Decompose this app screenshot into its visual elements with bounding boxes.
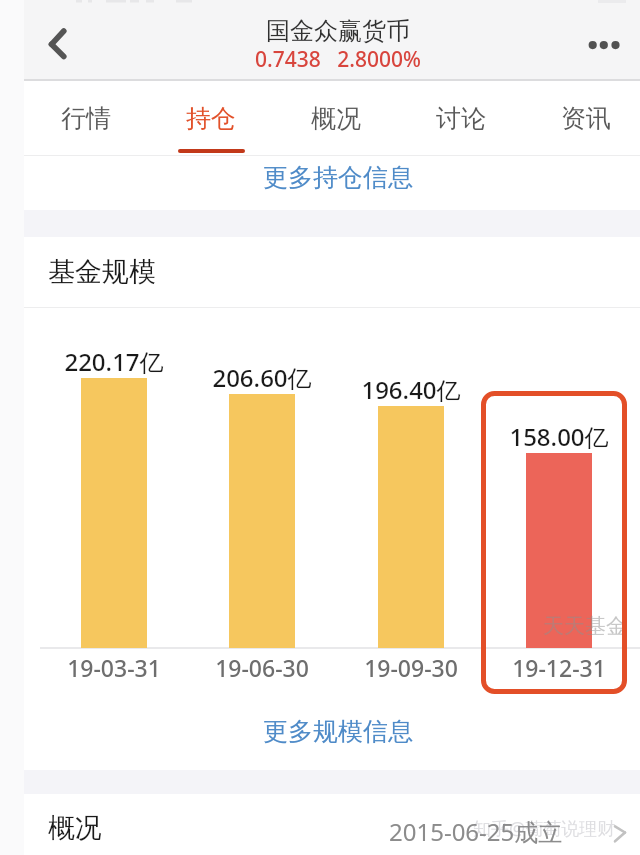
staticText: 天天基金 bbox=[543, 613, 627, 639]
button[interactable]: Back bbox=[30, 17, 82, 69]
staticText: 19-06-30 bbox=[215, 652, 309, 683]
staticText: 220.17亿 bbox=[64, 345, 164, 378]
button[interactable]: More options bbox=[578, 20, 628, 70]
button[interactable]: 更多规模信息 bbox=[0, 700, 640, 770]
staticText: 资讯 bbox=[561, 103, 611, 134]
staticText: 19-09-30 bbox=[364, 652, 458, 683]
button[interactable]: 概况 bbox=[274, 81, 398, 156]
staticText: 更多规模信息 bbox=[263, 716, 413, 747]
staticText: 基金规模 bbox=[48, 255, 156, 289]
staticText: 国金众赢货币 bbox=[266, 16, 410, 46]
button[interactable]: 持仓 bbox=[149, 81, 273, 156]
staticText: 概况 bbox=[48, 811, 102, 845]
staticText: 更多持仓信息 bbox=[263, 162, 413, 193]
staticText: 行情 bbox=[61, 103, 111, 134]
staticText: 讨论 bbox=[436, 103, 486, 134]
staticText: 知乎@葡萄说理财 bbox=[473, 816, 616, 841]
staticText: 196.40亿 bbox=[361, 373, 461, 406]
button[interactable]: 讨论 bbox=[399, 81, 523, 156]
button[interactable]: 行情 bbox=[24, 81, 148, 156]
staticText: 概况 bbox=[311, 103, 361, 134]
staticText: 19-03-31 bbox=[67, 652, 161, 683]
staticText: 持仓 bbox=[186, 103, 236, 134]
staticText: 2015-06-25成立 bbox=[389, 815, 563, 848]
button[interactable]: 更多持仓信息 bbox=[0, 156, 640, 210]
staticText: 19-12-31 bbox=[512, 652, 606, 683]
button[interactable]: 资讯 bbox=[524, 81, 640, 156]
staticText: 0.7438 2.8000% bbox=[255, 45, 421, 74]
button[interactable]: 概况 bbox=[0, 794, 640, 855]
staticText: 158.00亿 bbox=[509, 420, 609, 453]
staticText: 206.60亿 bbox=[212, 361, 312, 394]
